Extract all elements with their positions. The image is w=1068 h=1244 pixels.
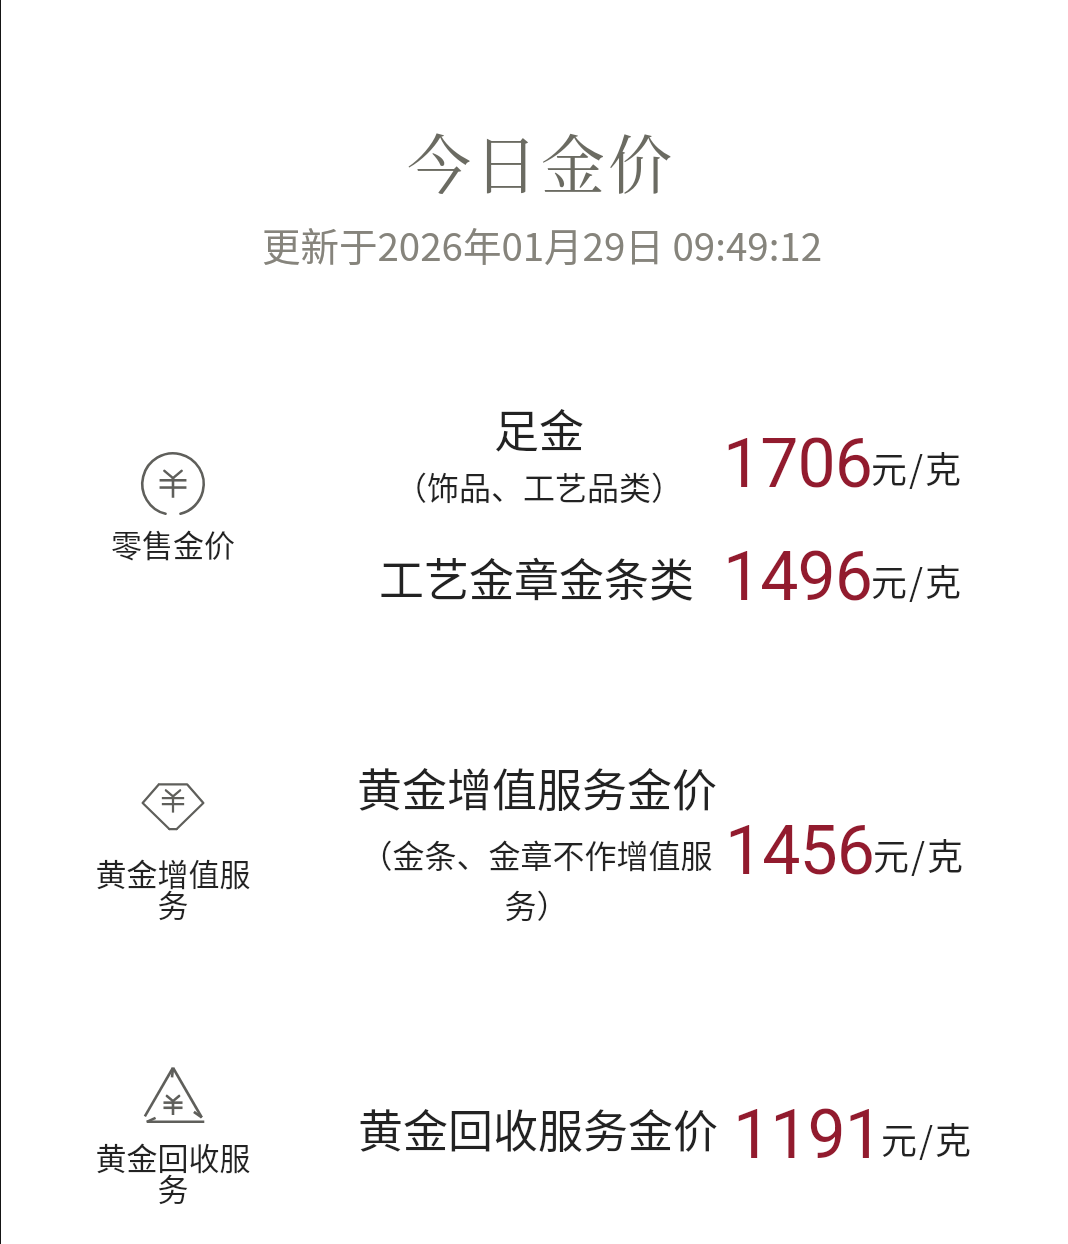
staticText: 元/克 bbox=[871, 441, 964, 493]
button[interactable]: 黄金增值服务金价 bbox=[357, 755, 718, 820]
staticText: 1191 bbox=[733, 1095, 882, 1175]
staticText: 工艺金章金条类 bbox=[379, 545, 695, 610]
button[interactable]: 黄金增值服务 bbox=[94, 772, 252, 926]
staticText: 黄金增值服务金价 bbox=[357, 755, 718, 820]
button[interactable]: 1496 元每克 bbox=[723, 537, 965, 617]
button[interactable]: 黄金回收服务金价 bbox=[358, 1096, 719, 1161]
button[interactable]: 黄金回收服务 bbox=[94, 1063, 252, 1210]
staticText: （金条、金章不作增值服务） bbox=[359, 831, 714, 927]
staticText: 足金 bbox=[389, 396, 689, 461]
button[interactable]: 足金 bbox=[389, 396, 689, 461]
staticText: 1496 bbox=[723, 537, 872, 617]
staticText: 更新于2026年01月29日 09:49:12 bbox=[8, 216, 1068, 272]
button[interactable]: 工艺金章金条类 bbox=[379, 545, 695, 610]
button[interactable]: 零售金价 bbox=[94, 452, 252, 566]
staticText: 黄金增值服务 bbox=[94, 850, 252, 926]
button[interactable]: 1191 元每克 bbox=[733, 1095, 975, 1175]
staticText: （饰品、工艺品类） bbox=[364, 463, 714, 509]
button[interactable]: 1706 元每克 bbox=[723, 424, 965, 504]
button[interactable]: （金条、金章不作增值服务） bbox=[359, 831, 714, 927]
staticText: 1706 bbox=[723, 424, 872, 504]
button[interactable]: （饰品、工艺品类） bbox=[364, 463, 714, 509]
button[interactable]: 1456 元每克 bbox=[725, 811, 967, 891]
staticText: 今日金价 bbox=[7, 114, 1068, 206]
staticText: 元/克 bbox=[871, 554, 964, 606]
staticText: 零售金价 bbox=[94, 521, 252, 566]
staticText: 黄金回收服务金价 bbox=[358, 1096, 719, 1161]
staticText: 1456 bbox=[725, 811, 874, 891]
staticText: 黄金回收服务 bbox=[94, 1134, 252, 1210]
staticText: 元/克 bbox=[873, 828, 966, 880]
staticText: 元/克 bbox=[881, 1112, 974, 1164]
